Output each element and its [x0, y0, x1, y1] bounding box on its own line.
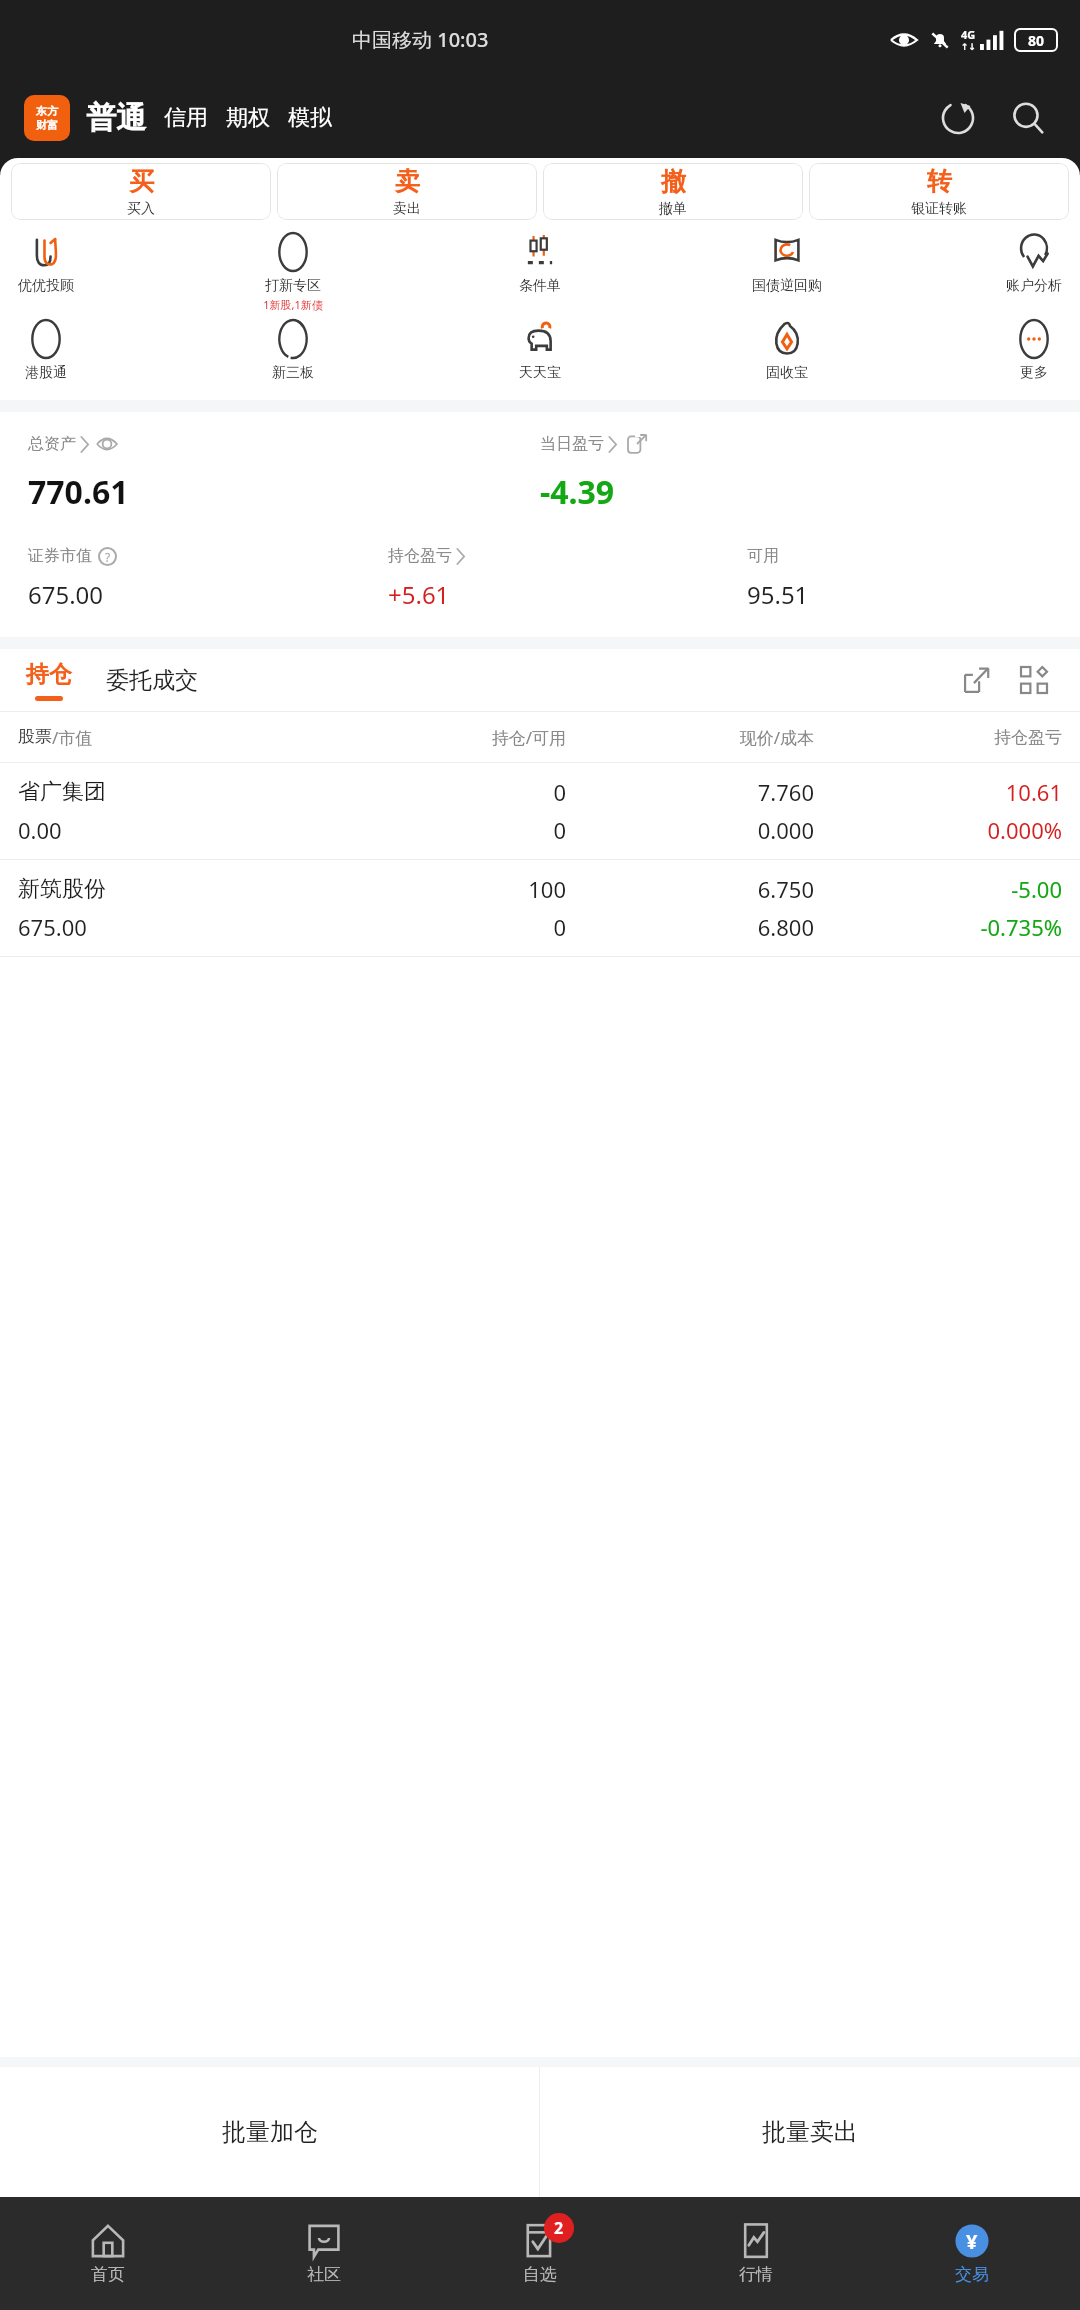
other: Eye protection — [891, 31, 917, 49]
staticText: 优优投顾 — [18, 277, 74, 295]
staticText: 交易 — [955, 2264, 989, 2285]
button[interactable]: 批量卖出 — [540, 2067, 1080, 2197]
button[interactable]: 天天宝 — [504, 320, 576, 382]
staticText: 撤单 — [659, 200, 687, 218]
staticText: 10.61 — [814, 777, 1062, 807]
staticText: 0.000 — [566, 815, 814, 845]
staticText: 买 — [129, 166, 154, 197]
staticText: 新筑股份 — [18, 875, 318, 903]
button[interactable]: 账户分析 — [998, 233, 1070, 295]
staticText: 6.800 — [566, 912, 814, 942]
staticText: -0.735% — [814, 912, 1062, 942]
staticText: 当日盈亏 — [540, 434, 604, 454]
staticText: 批量加仓 — [222, 2117, 318, 2147]
button[interactable]: 2 — [432, 2197, 648, 2310]
staticText: 持仓盈亏 — [388, 546, 452, 566]
button[interactable]: 更多 — [998, 320, 1070, 382]
staticText: 可用 — [747, 546, 779, 566]
staticText: 打新专区 — [265, 277, 321, 295]
button[interactable]: 国债逆回购 — [751, 233, 823, 295]
button[interactable]: Refresh — [932, 92, 984, 144]
other: Open detail — [627, 434, 647, 454]
staticText: 首页 — [91, 2264, 125, 2285]
staticText: 天天宝 — [519, 364, 561, 382]
staticText: 证券市值 — [28, 546, 92, 566]
button[interactable]: 优优投顾 — [10, 233, 82, 295]
staticText: ↑↓ — [961, 42, 977, 52]
staticText: 信用 — [164, 104, 208, 132]
button[interactable]: 行情 — [648, 2197, 864, 2310]
button[interactable]: 条件单 — [504, 233, 576, 295]
staticText: 更多 — [1020, 364, 1048, 382]
staticText: 买入 — [127, 200, 155, 218]
button[interactable]: Info — [98, 547, 117, 566]
button[interactable]: 普通 — [86, 99, 146, 137]
button[interactable]: 持仓盈亏 — [388, 546, 465, 566]
button[interactable]: Search — [1002, 92, 1054, 144]
staticText: 0.00 — [18, 815, 318, 845]
button[interactable]: 总资产 — [28, 434, 117, 454]
staticText: 行情 — [739, 2264, 773, 2285]
staticText: 卖出 — [393, 200, 421, 218]
staticText: +5.61 — [388, 578, 450, 611]
button[interactable]: 新筑股份 — [0, 860, 1080, 956]
staticText: 770.61 — [28, 470, 129, 514]
button[interactable]: 信用 — [164, 104, 208, 132]
staticText: -5.00 — [814, 874, 1062, 904]
staticText: 期权 — [226, 104, 270, 132]
staticText: 持仓 — [26, 660, 72, 689]
button[interactable]: 新三板 — [257, 320, 329, 382]
staticText: 0 — [318, 815, 566, 845]
staticText: 7.760 — [566, 777, 814, 807]
button[interactable]: 持仓 — [18, 660, 80, 701]
staticText: ? — [105, 549, 111, 565]
button[interactable]: ¥ — [864, 2197, 1080, 2310]
staticText: 东方 — [36, 104, 58, 118]
staticText: 总资产 — [28, 434, 76, 454]
staticText: 新三板 — [272, 364, 314, 382]
button[interactable]: 批量加仓 — [0, 2067, 539, 2197]
staticText: 4G — [961, 27, 976, 42]
staticText: 自选 — [523, 2264, 557, 2285]
staticText: 1新股,1新债 — [263, 297, 323, 312]
button[interactable]: Expand — [954, 658, 998, 702]
staticText: 国债逆回购 — [752, 277, 822, 295]
staticText: -4.39 — [540, 470, 615, 514]
button[interactable]: 委托成交 — [100, 658, 204, 703]
button[interactable]: 港股通 — [10, 320, 82, 382]
button[interactable]: 模拟 — [288, 104, 332, 132]
staticText: 80 — [1028, 31, 1045, 50]
button[interactable]: 省广集团 — [0, 763, 1080, 859]
button[interactable]: 卖 — [277, 163, 537, 220]
staticText: 0 — [318, 777, 566, 807]
staticText: 卖 — [395, 166, 420, 197]
staticText: 0 — [318, 912, 566, 942]
button[interactable]: 期权 — [226, 104, 270, 132]
staticText: 6.750 — [566, 874, 814, 904]
button[interactable]: 固收宝 — [751, 320, 823, 382]
staticText: 社区 — [307, 2264, 341, 2285]
button[interactable]: 转 — [809, 163, 1069, 220]
other: Silent — [929, 29, 951, 51]
button[interactable]: 当日盈亏 — [540, 434, 647, 454]
button[interactable]: 买 — [11, 163, 271, 220]
button[interactable]: 东方 — [24, 95, 70, 141]
staticText: 港股通 — [25, 364, 67, 382]
staticText: 0.000% — [814, 815, 1062, 845]
button[interactable]: 撤 — [543, 163, 803, 220]
staticText: 账户分析 — [1006, 277, 1062, 295]
staticText: 现价/成本 — [566, 726, 814, 749]
staticText: 675.00 — [28, 578, 104, 611]
staticText: 675.00 — [18, 912, 318, 942]
staticText: 批量卖出 — [762, 2117, 858, 2147]
button[interactable]: 打新专区 — [257, 233, 329, 312]
staticText: 2 — [554, 2217, 564, 2239]
button[interactable]: 首页 — [0, 2197, 216, 2310]
staticText: 普通 — [86, 99, 146, 137]
button[interactable]: 社区 — [216, 2197, 432, 2310]
button[interactable]: Grid view — [1012, 658, 1056, 702]
staticText: 100 — [318, 874, 566, 904]
staticText: 财富 — [36, 118, 58, 132]
staticText: 银证转账 — [911, 200, 967, 218]
staticText: 95.51 — [747, 578, 809, 611]
